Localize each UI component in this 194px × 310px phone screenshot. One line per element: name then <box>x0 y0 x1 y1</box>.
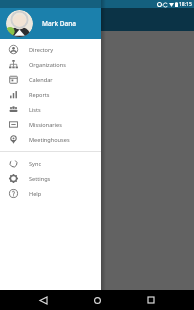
button[interactable]: Recents <box>140 290 162 310</box>
staticText: Meetinghouses <box>29 136 70 144</box>
button[interactable]: Directory <box>0 42 101 57</box>
staticText: Calendar <box>29 76 53 84</box>
button[interactable]: Help <box>0 186 101 201</box>
staticText: Lists <box>29 106 41 114</box>
button[interactable]: Organizations <box>0 57 101 72</box>
staticText: Settings <box>29 175 51 183</box>
button[interactable]: Sync <box>0 156 101 171</box>
button[interactable]: Missionaries <box>0 117 101 132</box>
staticText: Reports <box>29 91 50 99</box>
button[interactable]: Back <box>32 290 54 310</box>
staticText: 18:15 <box>179 1 192 8</box>
staticText: Directory <box>29 46 54 54</box>
staticText: Mark Dana <box>42 19 77 28</box>
staticText: Help <box>29 190 42 198</box>
button[interactable]: Settings <box>0 171 101 186</box>
button[interactable]: Calendar <box>0 72 101 87</box>
button[interactable]: Reports <box>0 87 101 102</box>
button[interactable]: Lists <box>0 102 101 117</box>
staticText: Organizations <box>29 61 66 69</box>
staticText: Missionaries <box>29 121 62 129</box>
button[interactable]: Mark Dana <box>0 8 101 39</box>
staticText: Sync <box>29 160 42 168</box>
button[interactable]: Meetinghouses <box>0 132 101 147</box>
button[interactable]: Home <box>86 290 108 310</box>
